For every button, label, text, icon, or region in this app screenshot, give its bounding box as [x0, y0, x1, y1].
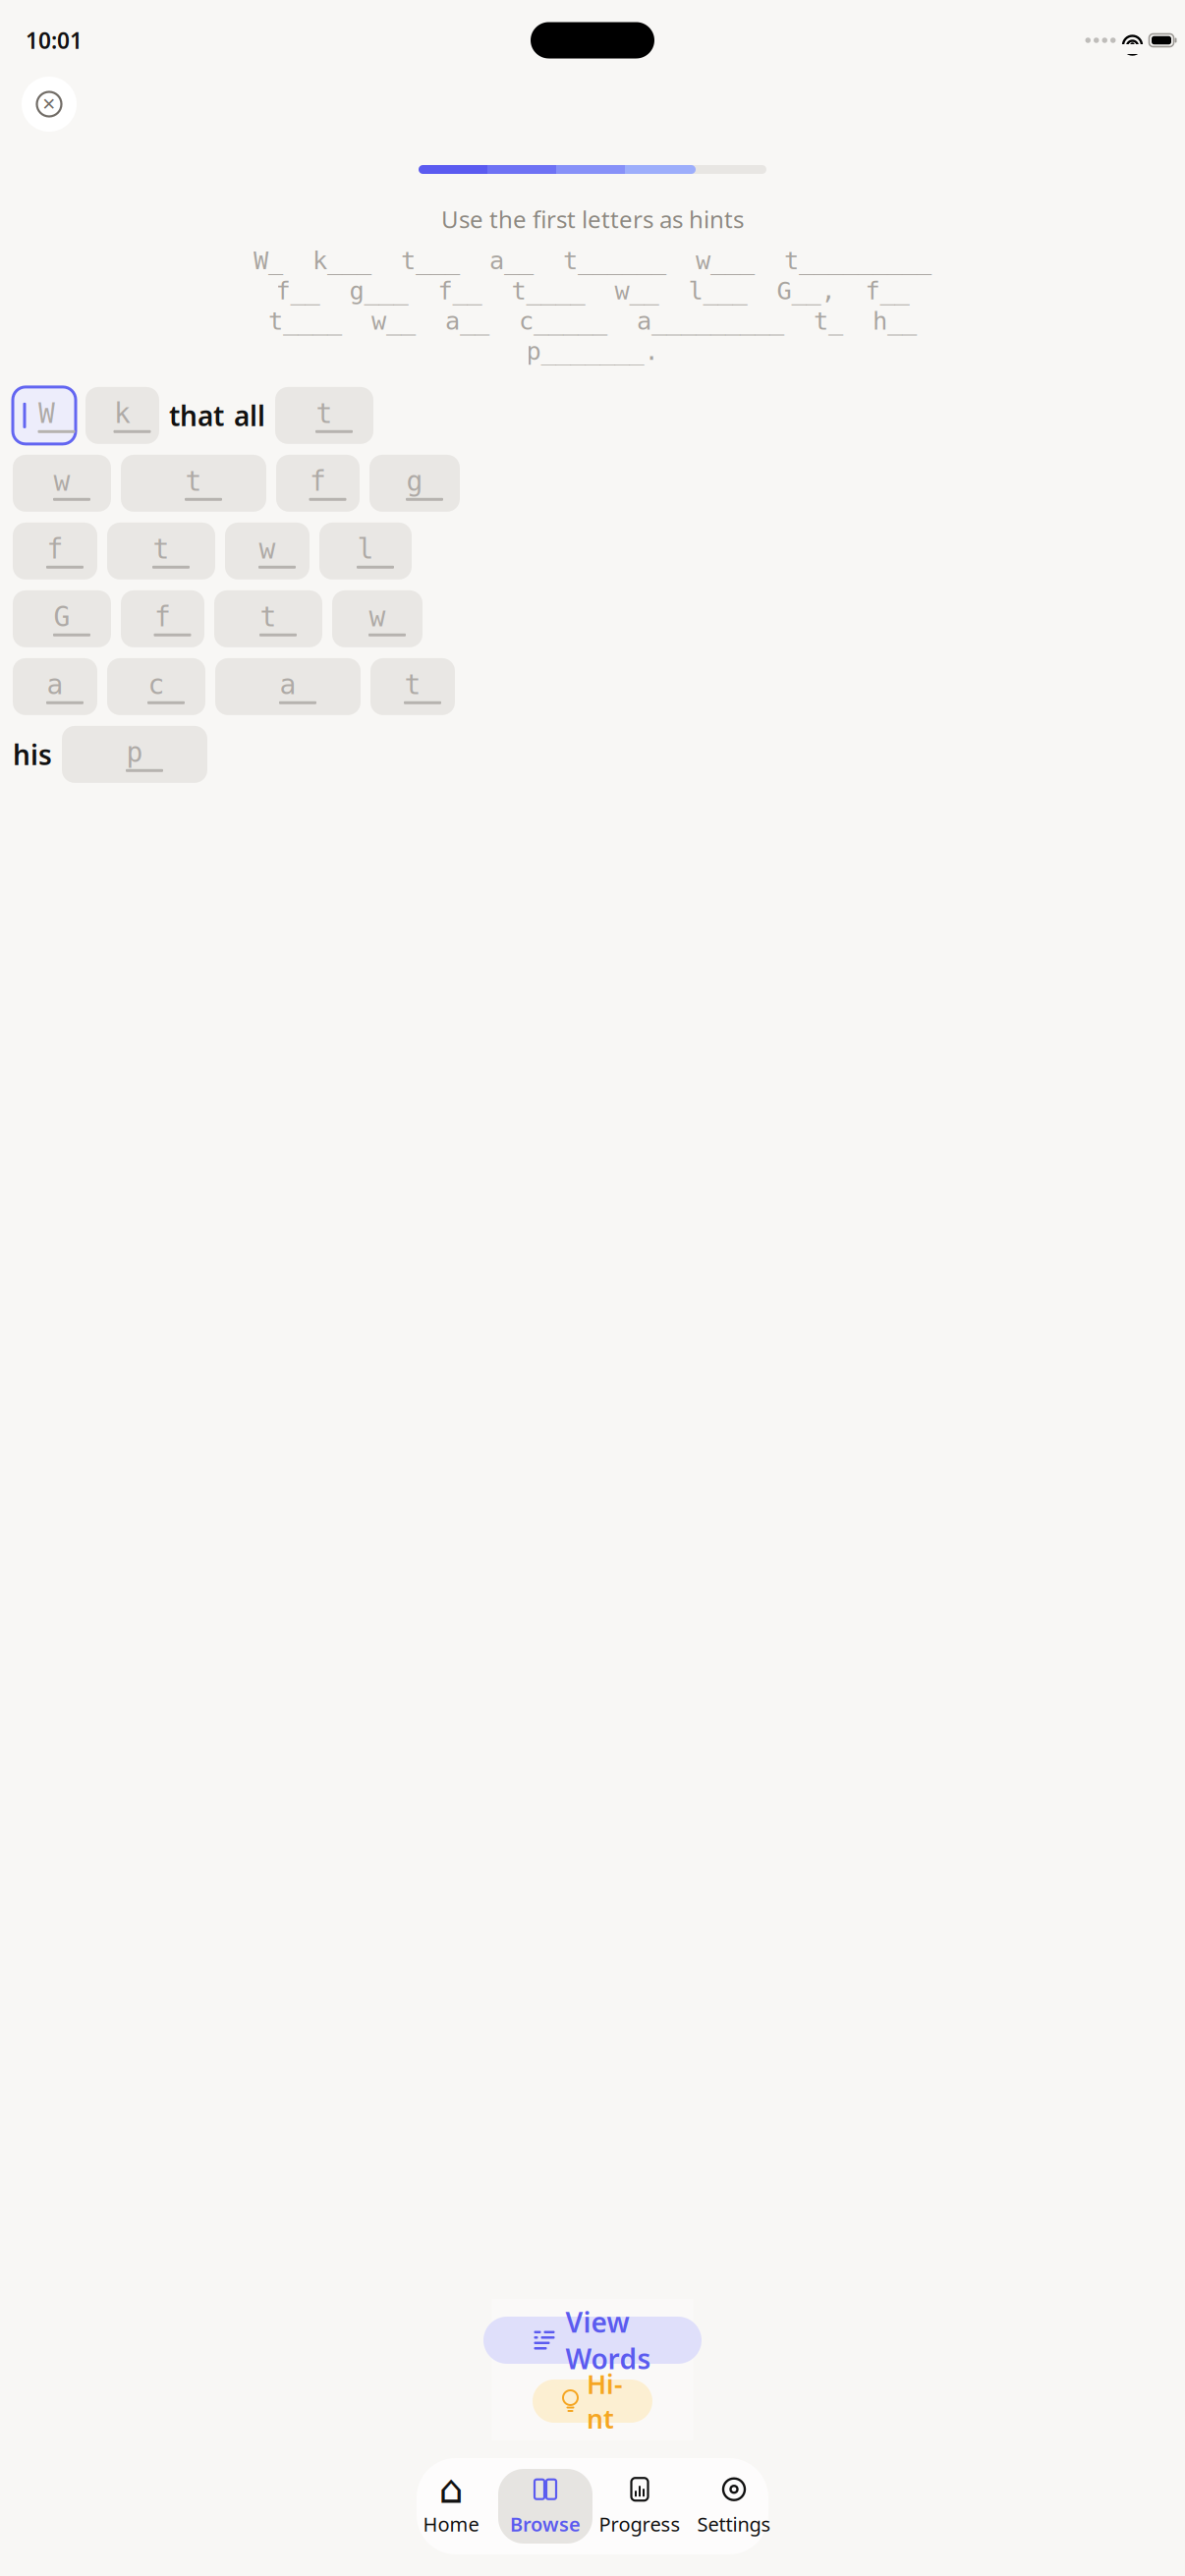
staticText: k	[114, 398, 131, 429]
staticText: t	[153, 533, 169, 565]
staticText: Progress	[599, 2511, 680, 2537]
button[interactable]: Word starting with w	[225, 523, 310, 580]
staticText: a	[280, 669, 296, 700]
button[interactable]: Word starting with c	[107, 658, 205, 715]
button[interactable]: Hint	[533, 2380, 652, 2423]
staticText: G	[54, 601, 70, 633]
button[interactable]: Word starting with t	[107, 523, 215, 580]
staticText: w	[259, 533, 276, 565]
staticText: Use the first letters as hints	[441, 203, 744, 235]
staticText: Home	[423, 2511, 479, 2537]
button[interactable]: Word starting with l	[319, 523, 412, 580]
staticText: f	[47, 533, 63, 565]
button[interactable]: Close	[22, 77, 77, 132]
staticText: c	[148, 669, 165, 700]
staticText: W	[38, 398, 55, 429]
button[interactable]: Settings	[687, 2469, 781, 2544]
staticText: g	[406, 466, 423, 497]
button[interactable]: Word starting with w	[13, 455, 111, 512]
staticText: t	[404, 669, 421, 700]
staticText: t	[316, 398, 333, 429]
staticText: all	[234, 397, 265, 434]
staticText: a	[47, 669, 63, 700]
staticText: p_______.	[526, 337, 659, 365]
button[interactable]: Progress	[592, 2469, 687, 2544]
staticText: t	[185, 466, 202, 497]
button[interactable]: Word starting with G	[13, 590, 111, 647]
staticText: p	[126, 737, 143, 768]
staticText: his	[13, 736, 52, 773]
staticText: 10:01	[26, 25, 83, 55]
button[interactable]: View Words	[483, 2317, 702, 2364]
staticText: t	[260, 601, 277, 633]
button[interactable]: Word starting with f	[13, 523, 97, 580]
staticText: f	[310, 466, 326, 497]
button[interactable]: Word starting with w	[332, 590, 423, 647]
button[interactable]: Word starting with f	[121, 590, 204, 647]
staticText: l	[357, 533, 374, 565]
button[interactable]: Word starting with W	[13, 387, 76, 444]
staticText: t____ w__ a__ c_____ a_________ t_ h__	[268, 307, 917, 335]
button[interactable]: Word starting with f	[276, 455, 360, 512]
button[interactable]: Word starting with p	[62, 726, 207, 783]
button[interactable]: Word starting with g	[369, 455, 460, 512]
staticText: ⌂	[439, 2467, 463, 2512]
button[interactable]: Browse	[498, 2469, 592, 2544]
staticText: f__ g___ f__ t____ w__ l___ G__, f__	[276, 277, 909, 305]
button[interactable]: ⌂	[404, 2469, 498, 2544]
staticText: Hint	[587, 2366, 623, 2436]
staticText: Browse	[510, 2511, 581, 2537]
staticText: View Words	[565, 2304, 651, 2377]
staticText: W_ k___ t___ a__ t______ w___ t_________	[254, 246, 931, 275]
staticText: w	[369, 601, 386, 633]
button[interactable]: Word starting with t	[275, 387, 373, 444]
button[interactable]: Word starting with k	[85, 387, 159, 444]
staticText: w	[54, 466, 70, 497]
button[interactable]: Word starting with a	[215, 658, 361, 715]
staticText: ✕	[42, 95, 56, 114]
staticText: that	[169, 397, 224, 434]
button[interactable]: Word starting with t	[214, 590, 322, 647]
staticText: f	[154, 601, 171, 633]
button[interactable]: Word starting with a	[13, 658, 97, 715]
button[interactable]: Word starting with t	[370, 658, 455, 715]
button[interactable]: Word starting with t	[121, 455, 266, 512]
staticText: Settings	[697, 2511, 771, 2537]
